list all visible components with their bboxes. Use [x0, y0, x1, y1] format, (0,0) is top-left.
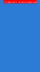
staticText: Choose and Share Resources — [3, 0, 36, 3]
